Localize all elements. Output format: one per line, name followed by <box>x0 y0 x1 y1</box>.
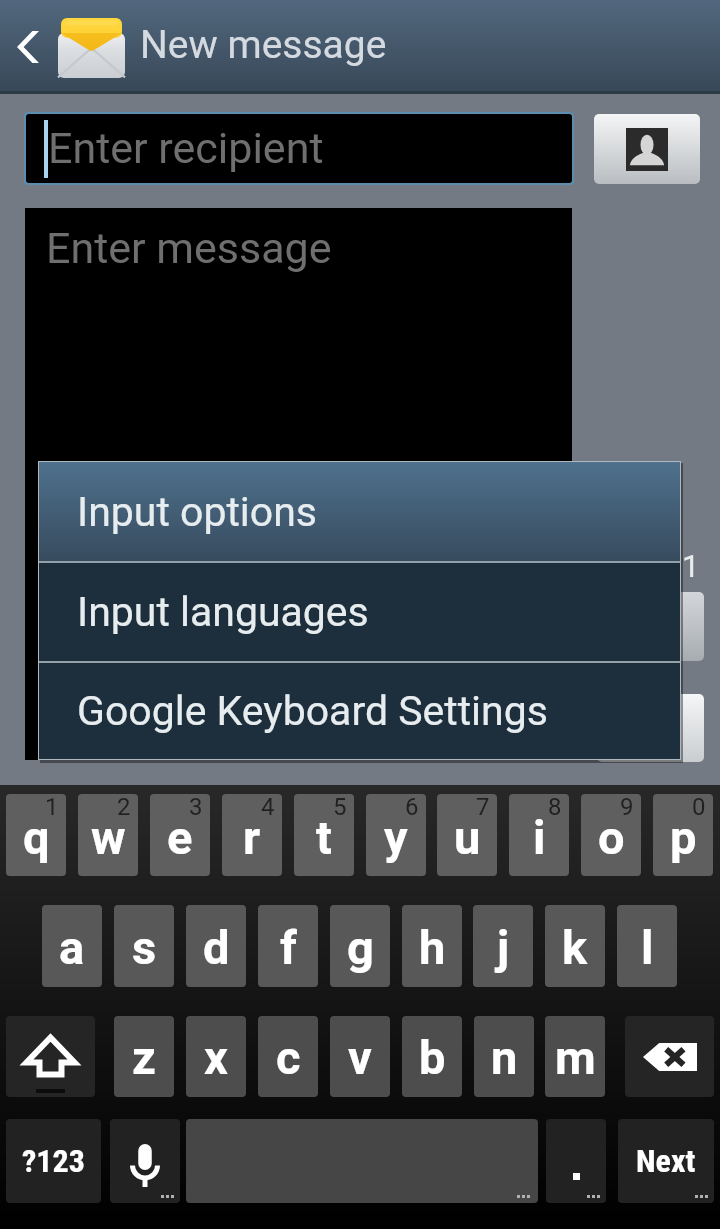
staticText: d <box>203 920 230 975</box>
staticText: 2 <box>117 794 131 821</box>
staticText: Next <box>636 1142 696 1180</box>
button[interactable]: j <box>473 905 533 987</box>
button[interactable]: Space <box>186 1119 538 1203</box>
button[interactable]: Enter message <box>25 208 572 760</box>
button[interactable]: r <box>222 794 282 876</box>
staticText: 9 <box>620 794 634 821</box>
button[interactable]: Enter recipient <box>26 114 572 183</box>
staticText: t <box>316 810 332 865</box>
button[interactable]: Voice input <box>110 1119 180 1203</box>
button[interactable]: l <box>617 905 677 987</box>
button[interactable]: p <box>653 794 713 876</box>
staticText: y <box>384 810 408 865</box>
button[interactable]: q <box>6 794 66 876</box>
button[interactable]: o <box>581 794 641 876</box>
staticText: h <box>419 920 446 975</box>
staticText: m <box>555 1030 596 1085</box>
staticText: z <box>132 1030 156 1085</box>
staticText: ?123 <box>22 1142 85 1180</box>
staticText: 6 <box>405 794 419 821</box>
button[interactable]: Backspace <box>625 1016 714 1097</box>
button[interactable]: d <box>186 905 246 987</box>
button[interactable]: y <box>366 794 426 876</box>
staticText: 8 <box>548 794 562 821</box>
button[interactable]: Send <box>597 592 704 661</box>
staticText: s <box>132 920 157 975</box>
staticText: k <box>562 920 588 975</box>
staticText: 1 <box>45 794 59 821</box>
staticText: i <box>533 810 546 865</box>
staticText: Enter recipient <box>48 123 324 173</box>
button[interactable]: x <box>186 1016 246 1097</box>
button[interactable]: w <box>78 794 138 876</box>
button[interactable]: Input languages <box>39 563 680 661</box>
button[interactable]: e <box>150 794 210 876</box>
button[interactable]: k <box>545 905 605 987</box>
staticText: Enter message <box>46 223 332 273</box>
button[interactable]: Next <box>618 1119 714 1203</box>
staticText: n <box>491 1030 518 1085</box>
button[interactable]: ?123 <box>6 1119 101 1203</box>
button[interactable]: Shift <box>6 1016 95 1097</box>
button[interactable]: a <box>42 905 102 987</box>
staticText: 5 <box>333 794 347 821</box>
staticText: x <box>204 1030 228 1085</box>
button[interactable]: Input options <box>39 462 680 561</box>
button[interactable]: h <box>402 905 462 987</box>
staticText: 1 <box>682 548 700 584</box>
button[interactable]: t <box>294 794 354 876</box>
staticText: c <box>276 1030 301 1085</box>
staticText: p <box>670 810 697 865</box>
staticText: b <box>419 1030 446 1085</box>
staticText: o <box>598 810 625 865</box>
button[interactable]: c <box>258 1016 318 1097</box>
staticText: g <box>347 920 374 975</box>
button[interactable] <box>546 1119 606 1203</box>
staticText: Google Keyboard Settings <box>77 687 548 735</box>
staticText: e <box>167 810 193 865</box>
staticText: 7 <box>476 794 490 821</box>
staticText: j <box>497 920 510 975</box>
staticText: r <box>243 810 261 865</box>
staticText: w <box>91 810 126 865</box>
staticText: l <box>641 920 654 975</box>
button[interactable]: Attach <box>597 694 704 762</box>
button[interactable]: n <box>474 1016 534 1097</box>
staticText: f <box>280 920 297 975</box>
button[interactable]: v <box>330 1016 390 1097</box>
staticText: 0 <box>692 794 706 821</box>
button[interactable]: u <box>437 794 497 876</box>
staticText: q <box>23 810 50 865</box>
button[interactable]: z <box>114 1016 174 1097</box>
staticText: Input options <box>77 488 317 536</box>
staticText: a <box>59 920 85 975</box>
staticText: v <box>348 1030 372 1085</box>
staticText: 3 <box>189 794 203 821</box>
button[interactable]: Back <box>0 0 56 94</box>
staticText: New message <box>140 22 387 68</box>
staticText: u <box>454 810 481 865</box>
staticText: 4 <box>261 794 275 821</box>
button[interactable]: m <box>545 1016 605 1097</box>
button[interactable]: Google Keyboard Settings <box>39 663 680 759</box>
button[interactable]: b <box>402 1016 462 1097</box>
button[interactable]: g <box>330 905 390 987</box>
button[interactable]: Choose contact <box>594 114 700 184</box>
staticText: Input languages <box>77 588 369 636</box>
button[interactable]: i <box>509 794 569 876</box>
button[interactable]: f <box>258 905 318 987</box>
button[interactable]: s <box>114 905 174 987</box>
